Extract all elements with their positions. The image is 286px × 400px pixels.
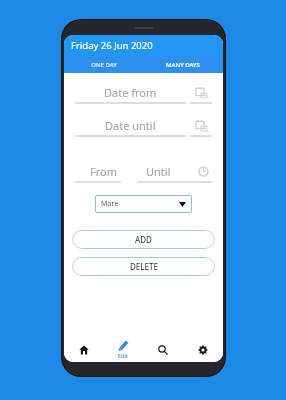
button[interactable]: Edit [103, 337, 143, 362]
staticText: From [90, 164, 117, 179]
button[interactable]: Search [143, 337, 183, 362]
staticText: Date from [104, 85, 157, 100]
button[interactable]: MANY DAYS [143, 56, 223, 73]
staticText: Date until [105, 118, 156, 133]
button[interactable]: Home [64, 337, 103, 362]
button[interactable]: Pick date [190, 83, 212, 105]
staticText: More [101, 199, 119, 209]
staticText: Friday 26 Jun 2020 [71, 39, 153, 52]
staticText: Edit [118, 352, 128, 359]
staticText: Until [146, 164, 171, 179]
staticText: MANY DAYS [166, 61, 200, 69]
button[interactable]: Settings [183, 337, 223, 362]
button[interactable]: Date until [75, 116, 212, 138]
button[interactable]: Date from [75, 83, 212, 105]
staticText: ADD [135, 234, 152, 245]
button[interactable]: Pick date [190, 116, 212, 138]
button[interactable]: From [75, 162, 131, 184]
staticText: ONE DAY [91, 61, 117, 69]
button[interactable]: More [95, 195, 192, 213]
button[interactable]: Until [137, 162, 194, 184]
button[interactable]: ONE DAY [64, 56, 143, 73]
button[interactable]: ADD [72, 230, 215, 249]
staticText: DELETE [130, 261, 158, 272]
button[interactable]: Pick time [194, 162, 212, 184]
button[interactable]: DELETE [72, 257, 215, 276]
